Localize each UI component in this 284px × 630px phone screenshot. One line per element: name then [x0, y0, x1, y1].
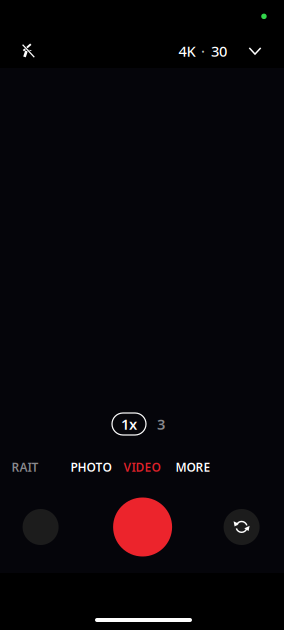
button[interactable]: 1x — [112, 413, 146, 435]
button[interactable]: Flash off — [10, 33, 46, 69]
staticText: VIDEO — [123, 459, 160, 475]
button[interactable]: RAIT — [0, 454, 51, 480]
button[interactable]: Record video — [107, 491, 179, 563]
staticText: 4K — [178, 41, 195, 61]
staticText: · — [201, 41, 205, 61]
staticText: PHOTO — [70, 459, 111, 475]
button[interactable]: Photo library — [15, 501, 67, 553]
button[interactable]: Switch camera — [216, 501, 268, 553]
button[interactable]: More camera controls — [238, 33, 272, 69]
staticText: 3 — [157, 414, 165, 434]
button[interactable]: 3 — [150, 413, 172, 435]
staticText: 1x — [121, 414, 137, 434]
button[interactable]: MORE — [166, 454, 220, 480]
staticText: RAIT — [11, 459, 38, 475]
staticText: MORE — [175, 459, 210, 475]
button[interactable]: VIDEO — [114, 454, 170, 480]
button[interactable]: PHOTO — [62, 454, 120, 480]
staticText: 30 — [211, 41, 227, 61]
button[interactable]: 4K — [178, 33, 228, 69]
